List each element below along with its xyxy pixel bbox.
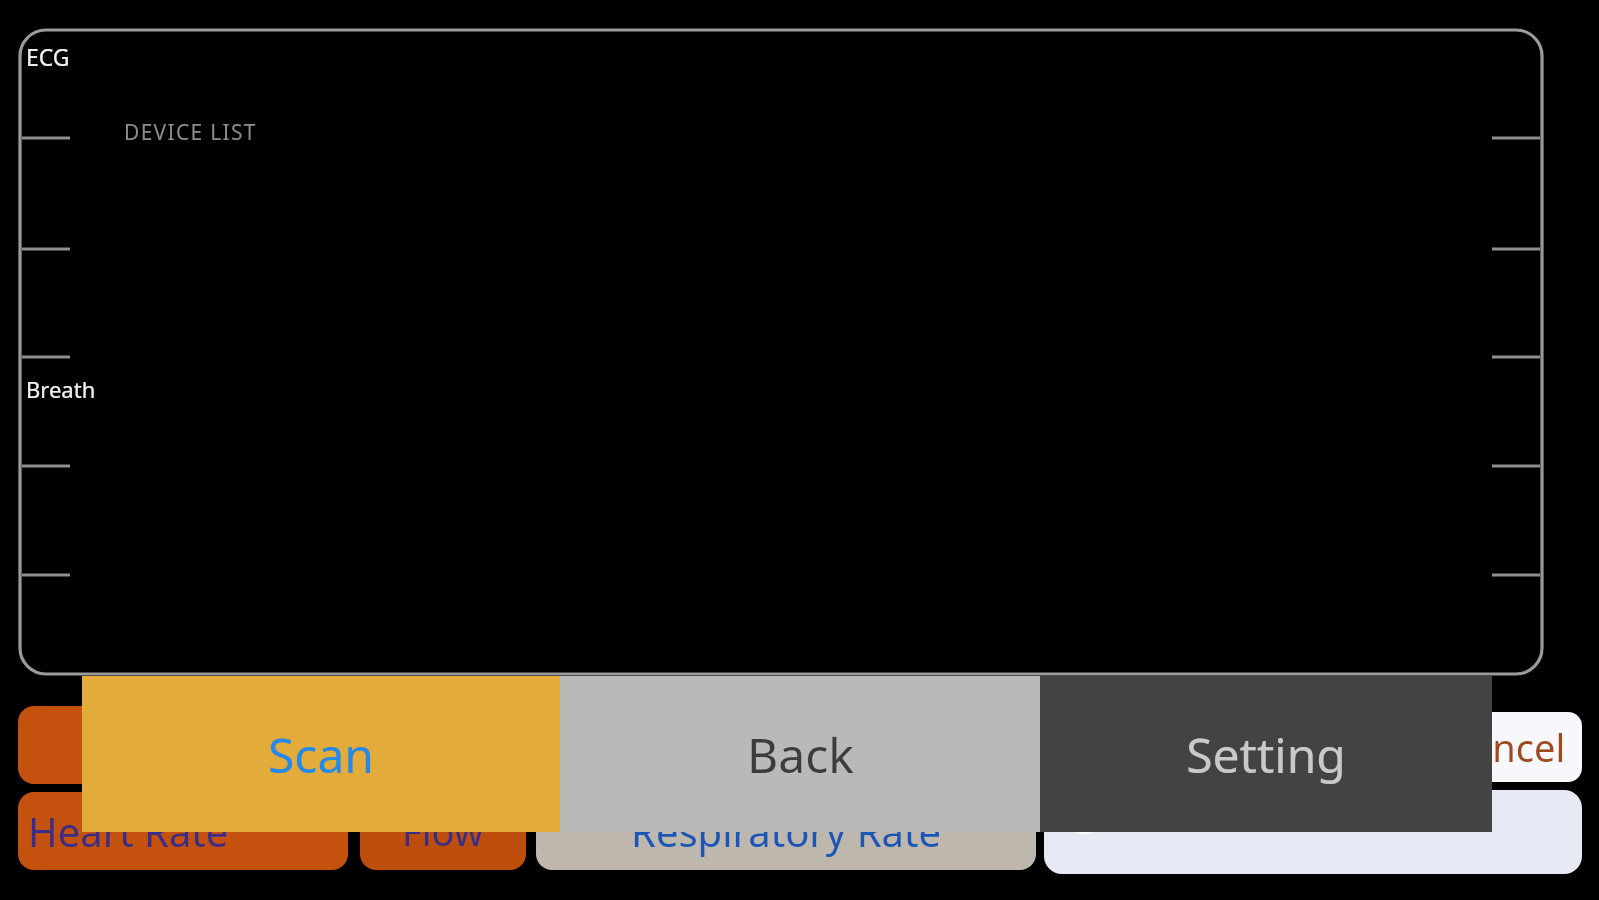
button[interactable]: DEVICE LIST xyxy=(124,118,257,147)
staticText: Scan xyxy=(268,722,374,787)
staticText: Heart Rate xyxy=(28,804,229,858)
button[interactable]: Back xyxy=(560,676,1040,832)
button[interactable]: Respiratory Rate xyxy=(536,792,1036,870)
staticText: Cancel xyxy=(1447,721,1566,773)
button[interactable]: Setting xyxy=(1040,676,1492,832)
staticText: Respiratory Rate xyxy=(631,804,941,858)
button[interactable]: Scan xyxy=(82,676,560,832)
button[interactable]: Cancel xyxy=(1430,712,1582,782)
button[interactable]: Heart Rate xyxy=(18,792,348,870)
button[interactable]: Device entry xyxy=(1044,790,1582,874)
staticText: Flow xyxy=(402,805,484,857)
staticText: Back xyxy=(747,722,854,787)
button[interactable]: Flow xyxy=(360,792,526,870)
button[interactable]: Signal chip xyxy=(18,706,348,784)
staticText: ECG xyxy=(26,41,70,72)
staticText: Breath xyxy=(26,374,96,404)
staticText: DEVICE LIST xyxy=(124,118,257,147)
staticText: Setting xyxy=(1186,722,1346,787)
